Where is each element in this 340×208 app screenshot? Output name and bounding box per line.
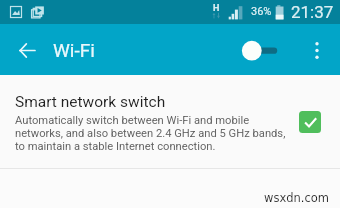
button[interactable]: Smart network switch <box>0 75 340 168</box>
staticText: Smart network switch <box>15 93 166 111</box>
staticText: wsxdn.com <box>264 191 330 204</box>
button[interactable]: Navigate up <box>7 31 46 70</box>
staticText: Automatically switch between Wi-Fi and m… <box>15 114 293 153</box>
button[interactable]: Wi-Fi on/off <box>236 33 284 67</box>
staticText: H <box>213 3 220 14</box>
staticText: 21:37 <box>291 2 334 22</box>
staticText: 36% <box>251 5 272 18</box>
staticText: Wi-Fi <box>53 39 95 61</box>
button[interactable]: More options <box>300 32 334 69</box>
